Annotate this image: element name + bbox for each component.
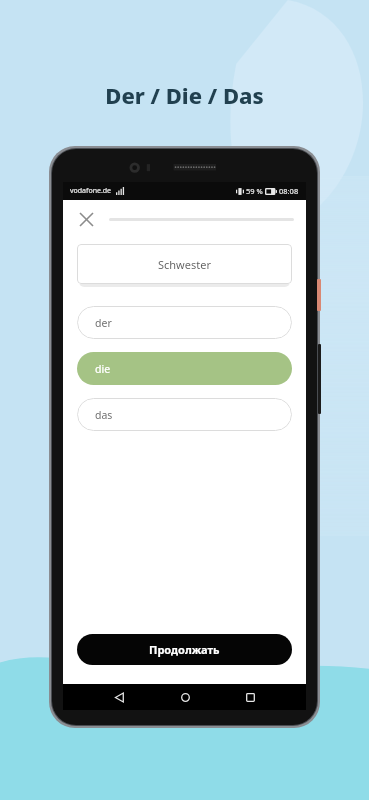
button[interactable]: der — [77, 306, 292, 339]
staticText: 59 % — [246, 186, 263, 196]
button[interactable]: die — [77, 352, 292, 385]
staticText: Schwester — [158, 257, 211, 272]
button[interactable]: Back — [109, 687, 129, 707]
button[interactable]: das — [77, 398, 292, 431]
staticText: vodafone.de — [70, 186, 112, 196]
staticText: das — [95, 408, 113, 422]
staticText: Der / Die / Das — [0, 80, 369, 110]
button[interactable]: Home — [175, 687, 195, 707]
button[interactable]: Recents — [240, 687, 260, 707]
staticText: Продолжать — [149, 642, 220, 657]
button[interactable]: Close — [73, 206, 99, 232]
staticText: der — [95, 316, 112, 330]
staticText: 08:08 — [279, 186, 299, 196]
button[interactable]: Продолжать — [77, 634, 292, 665]
staticText: die — [95, 362, 111, 376]
button[interactable]: Schwester — [77, 244, 292, 284]
